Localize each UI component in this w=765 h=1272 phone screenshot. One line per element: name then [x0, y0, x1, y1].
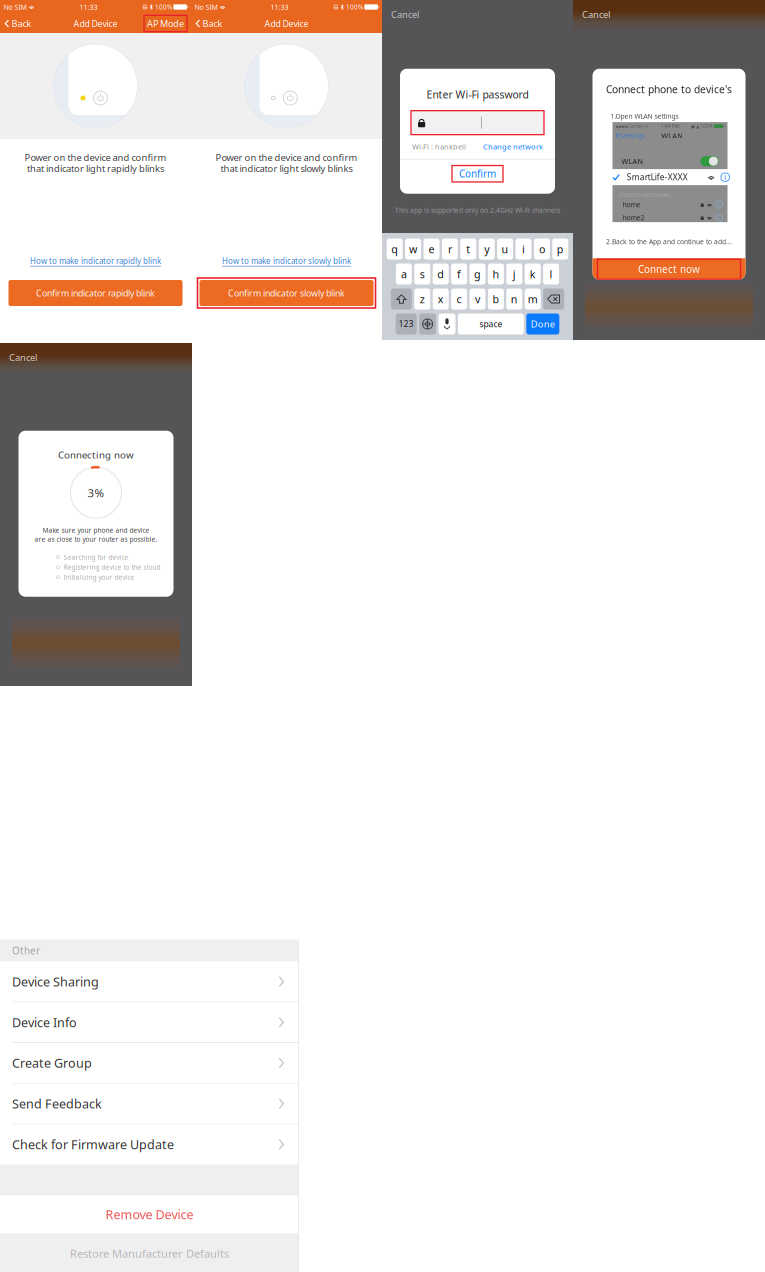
button[interactable]: Create Group: [0, 1043, 299, 1083]
staticText: 3%: [87, 485, 104, 500]
staticText: w: [409, 242, 417, 256]
staticText: Confirm: [459, 167, 496, 180]
staticText: How to make indicator slowly blink: [222, 256, 351, 266]
button[interactable]: Back: [191, 14, 222, 33]
button[interactable]: Device Info: [0, 1002, 299, 1042]
button[interactable]: Done: [526, 313, 559, 334]
staticText: home: [622, 200, 640, 209]
staticText: n: [511, 292, 518, 306]
staticText: 2.Back to the App and continue to add...: [606, 237, 732, 246]
button[interactable]: Confirm indicator slowly blink: [191, 280, 382, 306]
staticText: that indicator light rapidly blinks: [27, 162, 164, 175]
staticText: are as close to your router as possible.: [34, 535, 157, 544]
button[interactable]: v: [469, 288, 485, 309]
button[interactable]: f: [451, 263, 467, 284]
button[interactable]: Device Sharing: [0, 962, 299, 1002]
button[interactable]: Shift: [391, 288, 412, 309]
button[interactable]: Restore Manufacturer Defaults: [0, 1233, 299, 1272]
staticText: Connecting now: [58, 448, 134, 461]
staticText: f: [457, 267, 461, 281]
button[interactable]: Confirm: [452, 159, 503, 188]
button[interactable]: l: [543, 263, 559, 284]
staticText: Cancel: [9, 351, 37, 364]
button[interactable]: Change network: [483, 142, 543, 152]
staticText: Confirm indicator slowly blink: [228, 287, 345, 299]
button[interactable]: a: [396, 263, 412, 284]
staticText: i: [718, 214, 720, 222]
button[interactable]: s: [414, 263, 430, 284]
staticText: h: [492, 267, 499, 281]
staticText: m: [528, 292, 538, 306]
button[interactable]: Check for Firmware Update: [0, 1124, 299, 1164]
staticText: CHOOSE A NETWORK...: [618, 191, 672, 199]
staticText: This app is supported only on 2.4GHz Wi-…: [395, 206, 560, 215]
button[interactable]: j: [506, 263, 522, 284]
button[interactable]: Switch keyboard: [419, 313, 436, 334]
staticText: t: [466, 242, 470, 256]
staticText: No SIM: [194, 2, 217, 12]
button[interactable]: z: [414, 288, 430, 309]
button[interactable]: n: [506, 288, 522, 309]
button[interactable]: k: [525, 263, 541, 284]
staticText: ▪▪▪▪Carrier: [615, 123, 643, 129]
button[interactable]: o: [534, 238, 550, 259]
button[interactable]: How to make indicator slowly blink: [222, 255, 351, 267]
staticText: Add Device: [264, 17, 308, 29]
button[interactable]: e: [423, 238, 439, 259]
button[interactable]: space: [458, 313, 524, 334]
button[interactable]: AP Mode: [144, 15, 191, 32]
staticText: Remove Device: [105, 1206, 193, 1223]
staticText: 11:33: [79, 2, 97, 12]
staticText: Searching for device: [63, 553, 128, 562]
button[interactable]: Dictate: [438, 313, 455, 334]
staticText: r: [448, 242, 452, 256]
staticText: 1:49 PM: [661, 123, 679, 129]
button[interactable]: Connect now: [592, 258, 745, 280]
button[interactable]: x: [433, 288, 449, 309]
staticText: SmartLife-XXXX: [627, 171, 688, 183]
button[interactable]: w: [405, 238, 421, 259]
button[interactable]: Delete: [543, 288, 564, 309]
staticText: Cancel: [391, 8, 419, 21]
button[interactable]: h: [488, 263, 504, 284]
staticText: Registering device to the cloud: [63, 563, 160, 572]
staticText: o: [539, 242, 545, 256]
staticText: Cancel: [582, 8, 610, 21]
button[interactable]: u: [497, 238, 513, 259]
staticText: WLAN: [661, 131, 682, 141]
button[interactable]: Cancel: [0, 343, 37, 364]
staticText: Add Device: [73, 17, 117, 29]
button[interactable]: Send Feedback: [0, 1084, 299, 1124]
button[interactable]: p: [552, 238, 568, 259]
staticText: i: [724, 172, 726, 182]
button[interactable]: How to make indicator rapidly blink: [30, 255, 161, 267]
button[interactable]: b: [488, 288, 504, 309]
staticText: e: [428, 242, 434, 256]
staticText: j: [513, 267, 516, 281]
staticText: How to make indicator rapidly blink: [30, 256, 161, 266]
button[interactable]: y: [479, 238, 495, 259]
button[interactable]: Confirm indicator rapidly blink: [0, 280, 191, 306]
button[interactable]: q: [387, 238, 403, 259]
button[interactable]: t: [460, 238, 476, 259]
staticText: y: [484, 242, 489, 256]
staticText: Connect now: [638, 262, 700, 276]
button[interactable]: c: [451, 288, 467, 309]
button[interactable]: Cancel: [573, 0, 610, 21]
staticText: x: [438, 292, 444, 306]
button[interactable]: g: [469, 263, 485, 284]
button[interactable]: m: [525, 288, 541, 309]
staticText: Confirm indicator rapidly blink: [36, 287, 155, 299]
staticText: AP Mode: [147, 17, 184, 30]
button[interactable]: i: [515, 238, 531, 259]
staticText: i: [718, 201, 720, 209]
button[interactable]: Remove Device: [0, 1195, 299, 1233]
button[interactable]: Back: [0, 14, 31, 33]
staticText: a: [401, 267, 407, 281]
button[interactable]: Cancel: [382, 0, 419, 21]
staticText: Create Group: [12, 1054, 92, 1072]
staticText: Change network: [483, 142, 543, 152]
button[interactable]: r: [442, 238, 458, 259]
button[interactable]: d: [433, 263, 449, 284]
button[interactable]: 123: [396, 313, 417, 334]
